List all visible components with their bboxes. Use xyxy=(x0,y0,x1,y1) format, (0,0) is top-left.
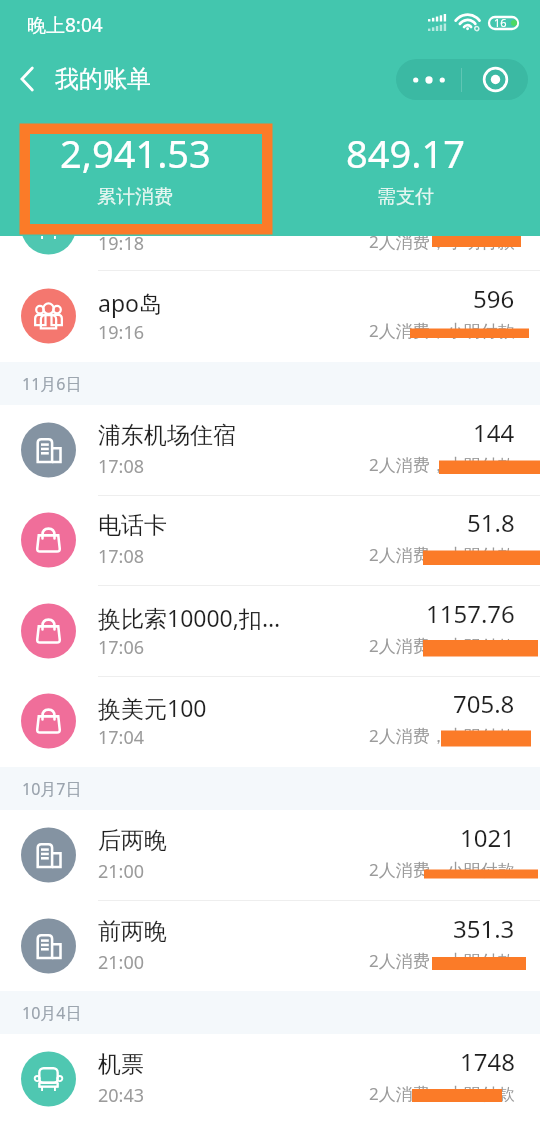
staticText: 我的账单 xyxy=(55,64,151,94)
staticText: 1157.76 xyxy=(426,597,515,630)
staticText: 17:04 xyxy=(98,725,145,750)
staticText: 1021 xyxy=(460,821,515,854)
staticText: 累计消费 xyxy=(97,185,173,209)
staticText: 705.8 xyxy=(453,687,515,720)
button[interactable]: 前两晚 xyxy=(0,901,540,991)
staticText: 16 xyxy=(494,15,507,30)
staticText: 2人消费，小明付款 xyxy=(369,319,515,342)
staticText: 后两晚 xyxy=(98,826,350,855)
button[interactable]: Back 我的账单 xyxy=(0,56,161,102)
staticText: 351.3 xyxy=(453,912,515,945)
staticText: 19:18 xyxy=(98,236,145,256)
staticText: 2人消费，小明付款 xyxy=(369,543,515,566)
button[interactable]: 浦东机场住宿 xyxy=(0,405,540,495)
staticText: 17:06 xyxy=(98,635,145,660)
button[interactable]: 电话卡 xyxy=(0,495,540,585)
staticText: 21:00 xyxy=(98,950,145,975)
staticText: 596 xyxy=(473,282,515,315)
button[interactable]: 849.17 xyxy=(270,127,540,209)
staticText: 2人消费，小明付款 xyxy=(369,634,515,657)
button[interactable]: 后两晚 xyxy=(0,810,540,900)
staticText: 1748 xyxy=(460,1045,515,1078)
staticText: 144 xyxy=(473,416,515,449)
staticText: 10月4日 xyxy=(22,1002,82,1024)
button[interactable]: 换比索10000,扣… xyxy=(0,586,540,676)
button[interactable]: 机票 xyxy=(0,236,540,272)
staticText: 11月6日 xyxy=(22,373,82,395)
staticText: 21:00 xyxy=(98,859,145,884)
staticText: 换美元100 xyxy=(98,692,350,723)
staticText: 2人消费，小明付款 xyxy=(369,236,515,253)
button[interactable]: 2,941.53 xyxy=(0,127,270,209)
staticText: 2人消费，小明付款 xyxy=(369,453,515,476)
staticText: 机票 xyxy=(98,1050,350,1079)
button[interactable]: apo岛 xyxy=(0,271,540,361)
staticText: 浦东机场住宿 xyxy=(98,421,350,450)
staticText: 2人消费，小明付款 xyxy=(369,858,515,881)
button[interactable]: More options xyxy=(396,59,461,100)
staticText: 换比索10000,扣… xyxy=(98,602,350,633)
staticText: 2人消费，小明付款 xyxy=(369,724,515,747)
staticText: apo岛 xyxy=(98,287,350,318)
staticText: 17:08 xyxy=(98,454,145,479)
staticText: 2人消费，小明付款 xyxy=(369,1082,515,1105)
staticText: 2人消费，小明付款 xyxy=(369,949,515,972)
staticText: 前两晚 xyxy=(98,917,350,946)
staticText: 晚上8:04 xyxy=(27,12,103,38)
staticText: 17:08 xyxy=(98,544,145,569)
button[interactable]: 换美元100 xyxy=(0,676,540,766)
staticText: 19:16 xyxy=(98,320,145,345)
staticText: 849.17 xyxy=(346,127,465,179)
staticText: 10月7日 xyxy=(22,778,82,800)
staticText: 2,941.53 xyxy=(60,127,211,179)
staticText: 电话卡 xyxy=(98,511,350,540)
button[interactable]: 机票 xyxy=(0,1034,540,1124)
staticText: 20:43 xyxy=(98,1083,145,1108)
button[interactable]: Close mini program xyxy=(462,59,528,100)
staticText: 51.8 xyxy=(467,506,515,539)
staticText: 需支付 xyxy=(377,185,434,209)
